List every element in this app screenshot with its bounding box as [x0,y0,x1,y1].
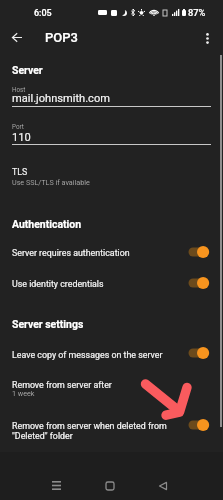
staticText: Host [12,86,26,93]
button[interactable]: Server requires authentication [0,240,223,268]
button[interactable]: Back [148,471,177,500]
button[interactable]: Port [0,119,223,147]
button[interactable]: Home [95,471,124,500]
button[interactable]: Navigate up [0,21,34,54]
staticText: Authentication [12,218,82,230]
button[interactable]: Remove from server when deleted from Del… [0,412,223,446]
staticText: 1 week [12,389,35,397]
staticText: Use SSL/TLS if available [12,178,90,186]
staticText: Server [12,64,43,76]
button[interactable]: Remove from server after, 1 week [0,373,223,402]
button[interactable]: More options [192,23,222,53]
staticText: TLS [12,167,28,177]
staticText: Leave copy of messages on the server [12,350,163,360]
staticText: mail.johnsmith.com [12,92,110,105]
staticText: Server requires authentication [12,248,130,258]
staticText: 6:05 [34,8,52,19]
button[interactable]: Recent apps [42,471,71,500]
button[interactable]: TLS, Use SSL/TLS if available [0,160,223,190]
button[interactable]: Host [0,82,223,110]
staticText: Port [12,123,24,130]
staticText: Use identity credentials [12,279,104,289]
staticText: Server settings [12,318,84,330]
button[interactable]: Use identity credentials [0,271,223,299]
staticText: 110 [12,131,31,144]
staticText: Remove from server after [12,380,112,390]
staticText: POP3 [45,30,78,45]
staticText: Remove from server when deleted from "De… [12,421,167,441]
staticText: 87% [188,7,206,18]
button[interactable]: Leave copy of messages on the server [0,342,223,370]
